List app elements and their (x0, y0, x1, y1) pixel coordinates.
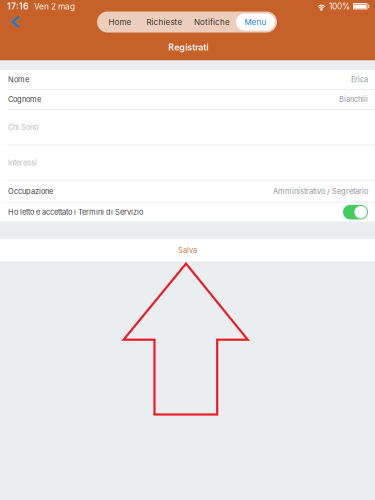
button[interactable]: Ho letto e accettato i Termini di Serviz… (0, 203, 375, 222)
staticText: Erica (351, 75, 368, 84)
staticText: Occupazione (8, 187, 53, 196)
staticText: Interessi (8, 158, 37, 167)
staticText: 17:16 (7, 1, 28, 12)
button[interactable]: Cognome (0, 90, 375, 109)
button[interactable]: Richieste (141, 13, 188, 30)
staticText: Salva (178, 246, 197, 255)
staticText: Ho letto e accettato i Termini di Serviz… (8, 208, 143, 217)
staticText: Bianchiii (339, 95, 368, 104)
staticText: Amministrativo / Segretario (273, 187, 368, 196)
button[interactable]: Chi Sono (0, 110, 375, 145)
staticText: Notifiche (194, 17, 230, 27)
staticText: 100% (329, 1, 350, 11)
staticText: Home (108, 17, 131, 27)
staticText: Menu (244, 17, 266, 27)
button[interactable]: Salva (0, 239, 375, 261)
button[interactable]: Back (5, 9, 27, 35)
button[interactable]: Notifiche (188, 13, 236, 30)
staticText: Cognome (8, 95, 41, 104)
button[interactable]: Home (99, 13, 141, 30)
staticText: Nome (8, 75, 29, 84)
button[interactable]: Interessi (0, 145, 375, 180)
staticText: Richieste (146, 17, 182, 27)
staticText: Ven 2 mag (34, 1, 75, 11)
staticText: Registrati (168, 42, 208, 53)
staticText: Chi Sono (8, 123, 38, 132)
button[interactable]: Menu (236, 13, 275, 30)
button[interactable]: Nome (0, 70, 375, 89)
button[interactable]: Occupazione (0, 181, 375, 202)
